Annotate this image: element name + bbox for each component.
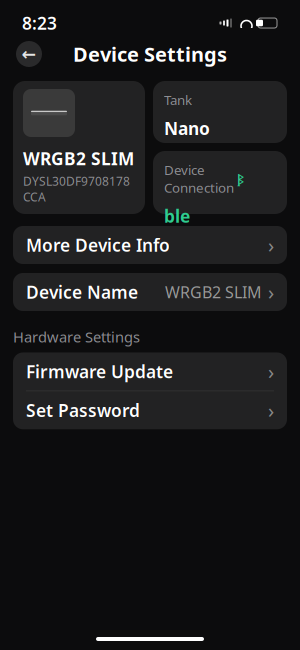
button[interactable]: Back <box>16 41 42 67</box>
staticText: Device Connection <box>164 161 234 196</box>
button[interactable]: Firmware Update <box>13 352 287 390</box>
staticText: › <box>268 232 274 258</box>
staticText: WRGB2 SLIM <box>165 281 262 303</box>
staticText: ← <box>21 44 36 64</box>
staticText: ᛒ <box>237 170 244 187</box>
staticText: ble <box>164 204 190 227</box>
staticText: Set Password <box>26 399 140 422</box>
staticText: › <box>268 358 274 385</box>
button[interactable]: Device Name <box>13 273 287 311</box>
staticText: Nano <box>164 117 210 140</box>
staticText: 8:23 <box>22 11 57 34</box>
staticText: Hardware Settings <box>13 327 140 346</box>
staticText: Firmware Update <box>26 360 173 383</box>
staticText: › <box>268 279 274 305</box>
button[interactable]: More Device Info <box>13 226 287 264</box>
staticText: Device Settings <box>73 41 227 67</box>
button[interactable]: Set Password <box>13 391 287 429</box>
staticText: Device Name <box>26 280 138 303</box>
staticText: More Device Info <box>26 233 170 256</box>
staticText: DYSL30DF9708178CCA <box>23 173 130 205</box>
staticText: › <box>268 397 274 424</box>
staticText: Tank <box>164 91 192 109</box>
staticText: WRGB2 SLIM <box>23 147 134 170</box>
